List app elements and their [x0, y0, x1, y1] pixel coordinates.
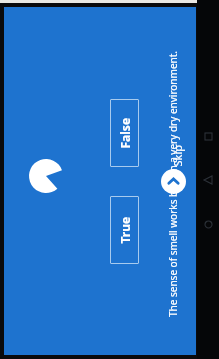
button[interactable]: Recents	[197, 125, 219, 147]
staticText: True	[116, 216, 132, 243]
button[interactable]: False	[110, 99, 139, 167]
button[interactable]: Skip question	[161, 169, 186, 194]
staticText: The sense of smell works best in a very …	[165, 50, 179, 317]
button[interactable]: Back	[197, 169, 219, 191]
staticText: Skip	[169, 144, 184, 166]
staticText: False	[116, 117, 132, 148]
button[interactable]: Home	[197, 213, 219, 235]
button[interactable]: True	[110, 196, 139, 264]
